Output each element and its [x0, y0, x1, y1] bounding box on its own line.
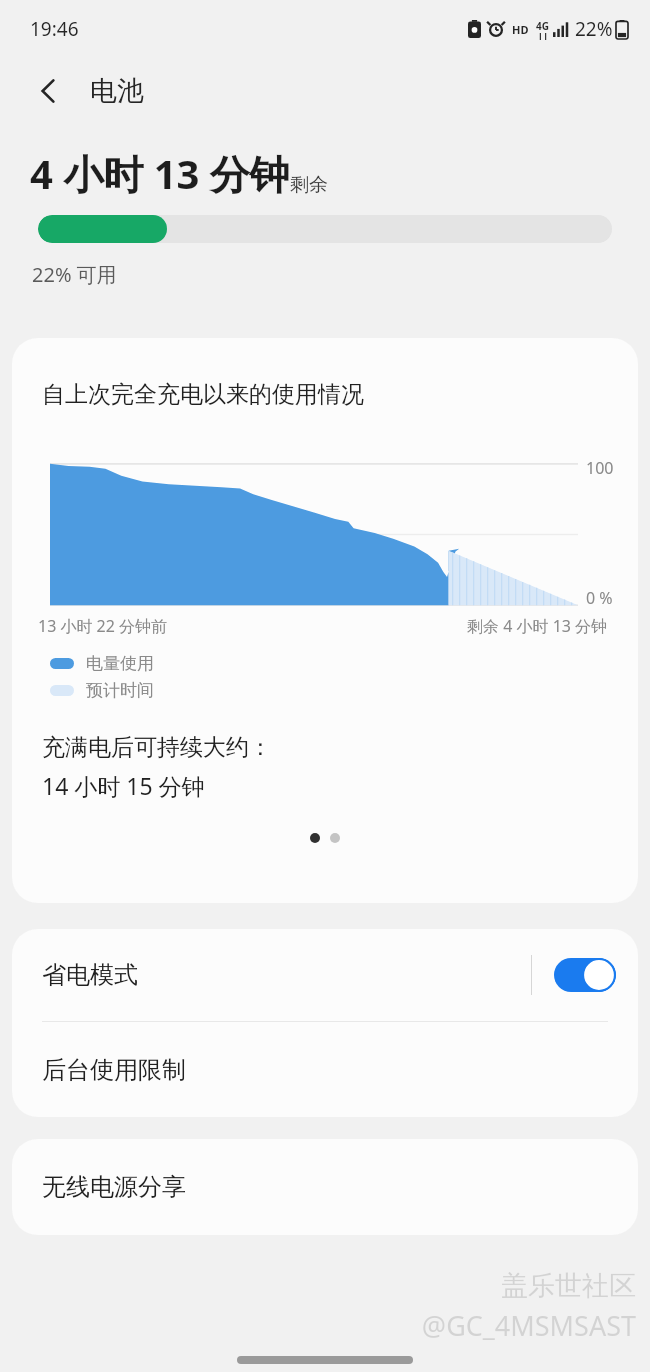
staticText: 电池 [90, 74, 144, 108]
button[interactable]: Back [26, 68, 72, 114]
staticText: 22% 可用 [32, 261, 117, 288]
staticText: @GC_4MSMSAST [421, 1307, 636, 1344]
staticText: 22% [575, 16, 613, 42]
staticText: 电量使用 [86, 653, 154, 674]
staticText: 19:46 [30, 16, 79, 42]
button[interactable]: 无线电源分享 [12, 1139, 638, 1235]
button[interactable]: Power saving toggle [554, 958, 616, 992]
staticText: 剩余 [290, 173, 328, 197]
staticText: 4 小时 13 分钟 [30, 146, 290, 201]
button[interactable]: 自上次完全充电以来的使用情况 [12, 338, 638, 903]
staticText: 100 [586, 457, 614, 479]
staticText: 4G [536, 19, 549, 33]
staticText: 13 小时 22 分钟前 [38, 615, 168, 637]
staticText: 预计时间 [86, 680, 154, 701]
staticText: 充满电后可持续大约： [42, 733, 272, 762]
button[interactable]: 后台使用限制 [12, 1022, 638, 1117]
staticText: 自上次完全充电以来的使用情况 [42, 380, 364, 409]
staticText: 14 小时 15 分钟 [42, 770, 205, 801]
staticText: HD [512, 22, 529, 37]
staticText: 省电模式 [42, 960, 531, 990]
staticText: 盖乐世社区 [501, 1269, 636, 1303]
staticText: 后台使用限制 [42, 1055, 186, 1085]
button[interactable]: 省电模式 [12, 929, 638, 1021]
staticText: 0 % [586, 587, 613, 609]
staticText: 无线电源分享 [42, 1172, 186, 1202]
staticText: 剩余 4 小时 13 分钟 [467, 615, 608, 637]
